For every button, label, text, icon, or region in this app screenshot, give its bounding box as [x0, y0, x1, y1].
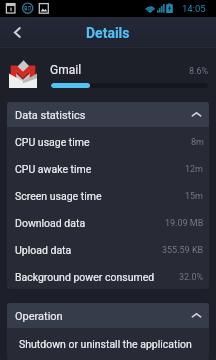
staticText: Details	[86, 25, 130, 41]
staticText: Gmail	[50, 63, 82, 77]
staticText: CPU awake time	[15, 163, 92, 175]
staticText: Upload data	[15, 244, 72, 256]
staticText: 8m	[191, 137, 204, 148]
button[interactable]: Operation	[7, 303, 209, 328]
staticText: Data statistics	[15, 109, 86, 122]
button[interactable]: Upload data	[7, 235, 209, 262]
staticText: 355.59 KB	[162, 245, 204, 256]
staticText: Shutdown or uninstall the application	[19, 338, 192, 350]
staticText: 19.09 MB	[165, 218, 204, 229]
button[interactable]: Back	[0, 17, 34, 48]
button[interactable]: Screen usage time	[7, 181, 209, 208]
staticText: Download data	[15, 217, 86, 229]
staticText: 12m	[185, 164, 204, 175]
button[interactable]: Data statistics	[7, 102, 209, 127]
button[interactable]: Background power consumed	[7, 262, 209, 289]
button[interactable]: Download data	[7, 208, 209, 235]
staticText: Operation	[15, 310, 63, 323]
staticText: CPU usage time	[15, 136, 90, 148]
staticText: 8.6%	[189, 66, 209, 77]
staticText: Background power consumed	[15, 271, 155, 283]
button[interactable]: CPU awake time	[7, 154, 209, 181]
staticText: 14:05	[182, 3, 206, 14]
staticText: Screen usage time	[15, 190, 102, 202]
button[interactable]: CPU usage time	[7, 127, 209, 154]
staticText: 15m	[185, 191, 204, 202]
button[interactable]: Shutdown or uninstall the application	[7, 328, 209, 360]
staticText: 32.0%	[179, 272, 204, 283]
